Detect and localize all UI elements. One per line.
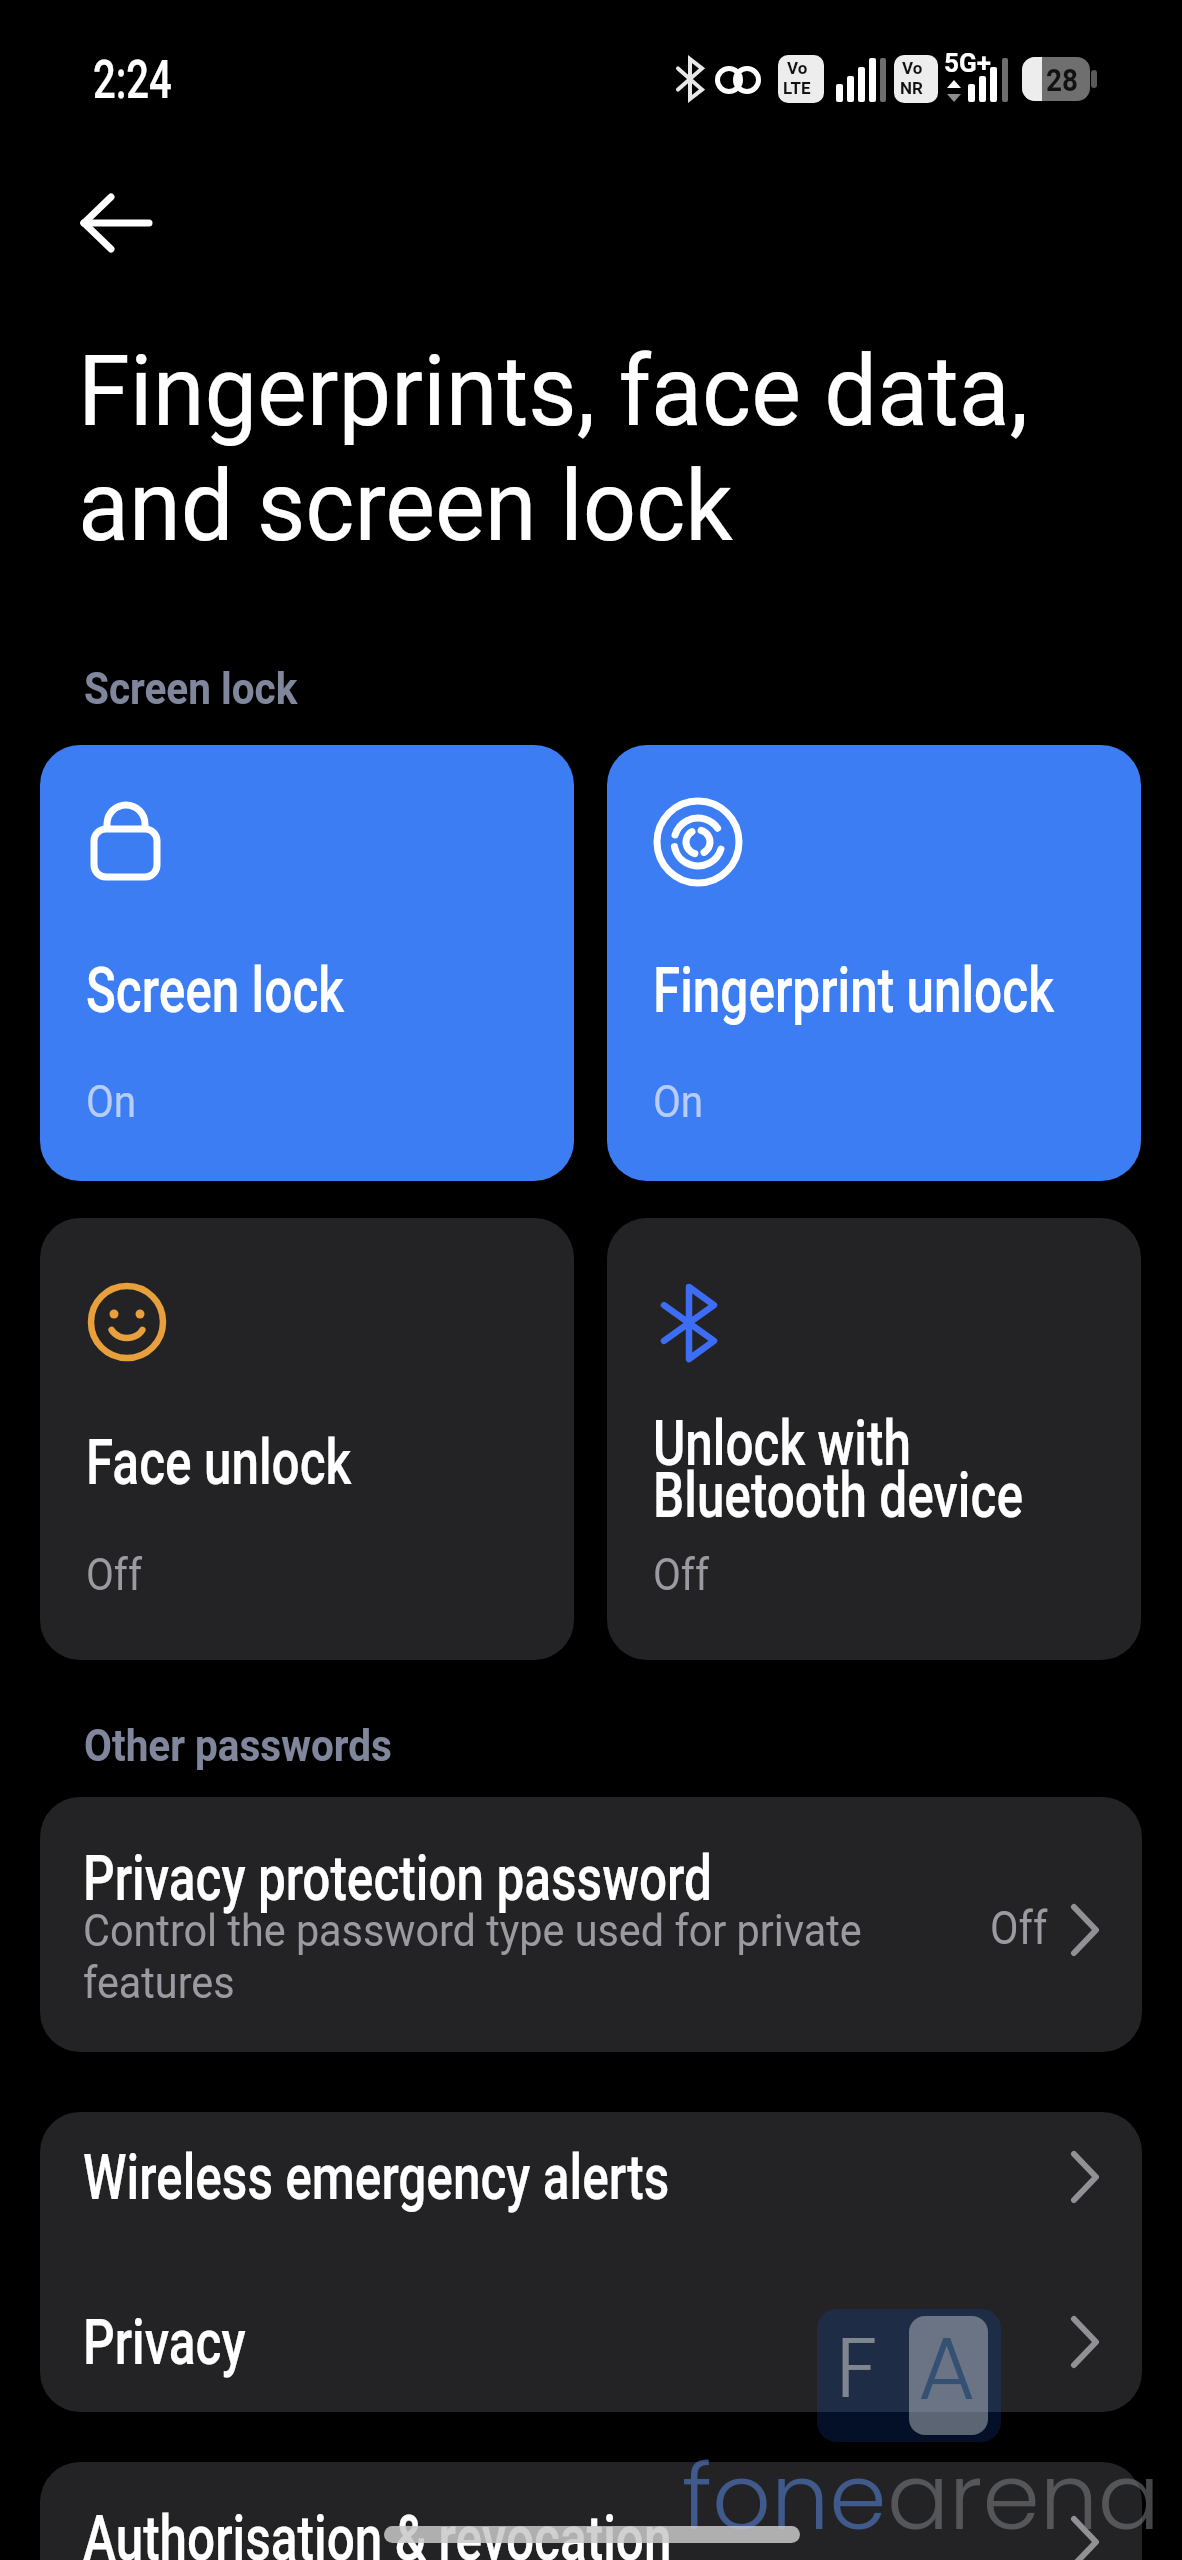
staticText: 28: [1046, 62, 1078, 98]
button[interactable]: Wireless emergency alerts: [40, 2112, 1142, 2262]
staticText: 5G+: [944, 48, 991, 78]
staticText: Fingerprints, face data,: [78, 334, 1028, 449]
staticText: fone: [682, 2432, 887, 2560]
staticText: On: [653, 1075, 703, 1128]
staticText: Unlock with: [653, 1407, 911, 1481]
staticText: 2:24: [93, 48, 172, 111]
staticText: Off: [990, 1901, 1048, 1955]
staticText: NR: [900, 78, 923, 98]
staticText: Bluetooth device: [653, 1459, 1023, 1533]
staticText: On: [86, 1075, 136, 1128]
staticText: F: [836, 2309, 878, 2427]
button[interactable]: [62, 178, 172, 268]
staticText: A: [918, 2307, 976, 2430]
staticText: Fingerprint unlock: [653, 954, 1054, 1028]
staticText: Off: [86, 1548, 143, 1601]
button[interactable]: Unlock with: [607, 1218, 1141, 1660]
staticText: LTE: [783, 78, 811, 98]
staticText: Privacy protection password: [83, 1842, 713, 1916]
staticText: arena: [887, 2432, 1160, 2560]
staticText: Screen lock: [84, 663, 297, 715]
staticText: and screen lock: [78, 449, 733, 564]
staticText: Vo: [787, 58, 808, 78]
staticText: Face unlock: [86, 1426, 352, 1500]
button[interactable]: Screen lock: [40, 745, 574, 1181]
staticText: Control the password type used for priva…: [83, 1905, 862, 1957]
button[interactable]: Authorisation & revocation: [40, 2462, 1142, 2560]
staticText: Off: [653, 1548, 710, 1601]
staticText: Privacy: [83, 2306, 246, 2380]
button[interactable]: Privacy: [40, 2262, 1142, 2412]
staticText: features: [83, 1957, 235, 2009]
staticText: Vo: [902, 58, 923, 78]
staticText: Other passwords: [84, 1720, 392, 1772]
staticText: Wireless emergency alerts: [83, 2141, 669, 2215]
button[interactable]: Face unlock: [40, 1218, 574, 1660]
staticText: Authorisation & revocation: [83, 2502, 672, 2560]
staticText: Screen lock: [86, 954, 344, 1028]
button[interactable]: Privacy protection password: [40, 1797, 1142, 2052]
button[interactable]: Fingerprint unlock: [607, 745, 1141, 1181]
